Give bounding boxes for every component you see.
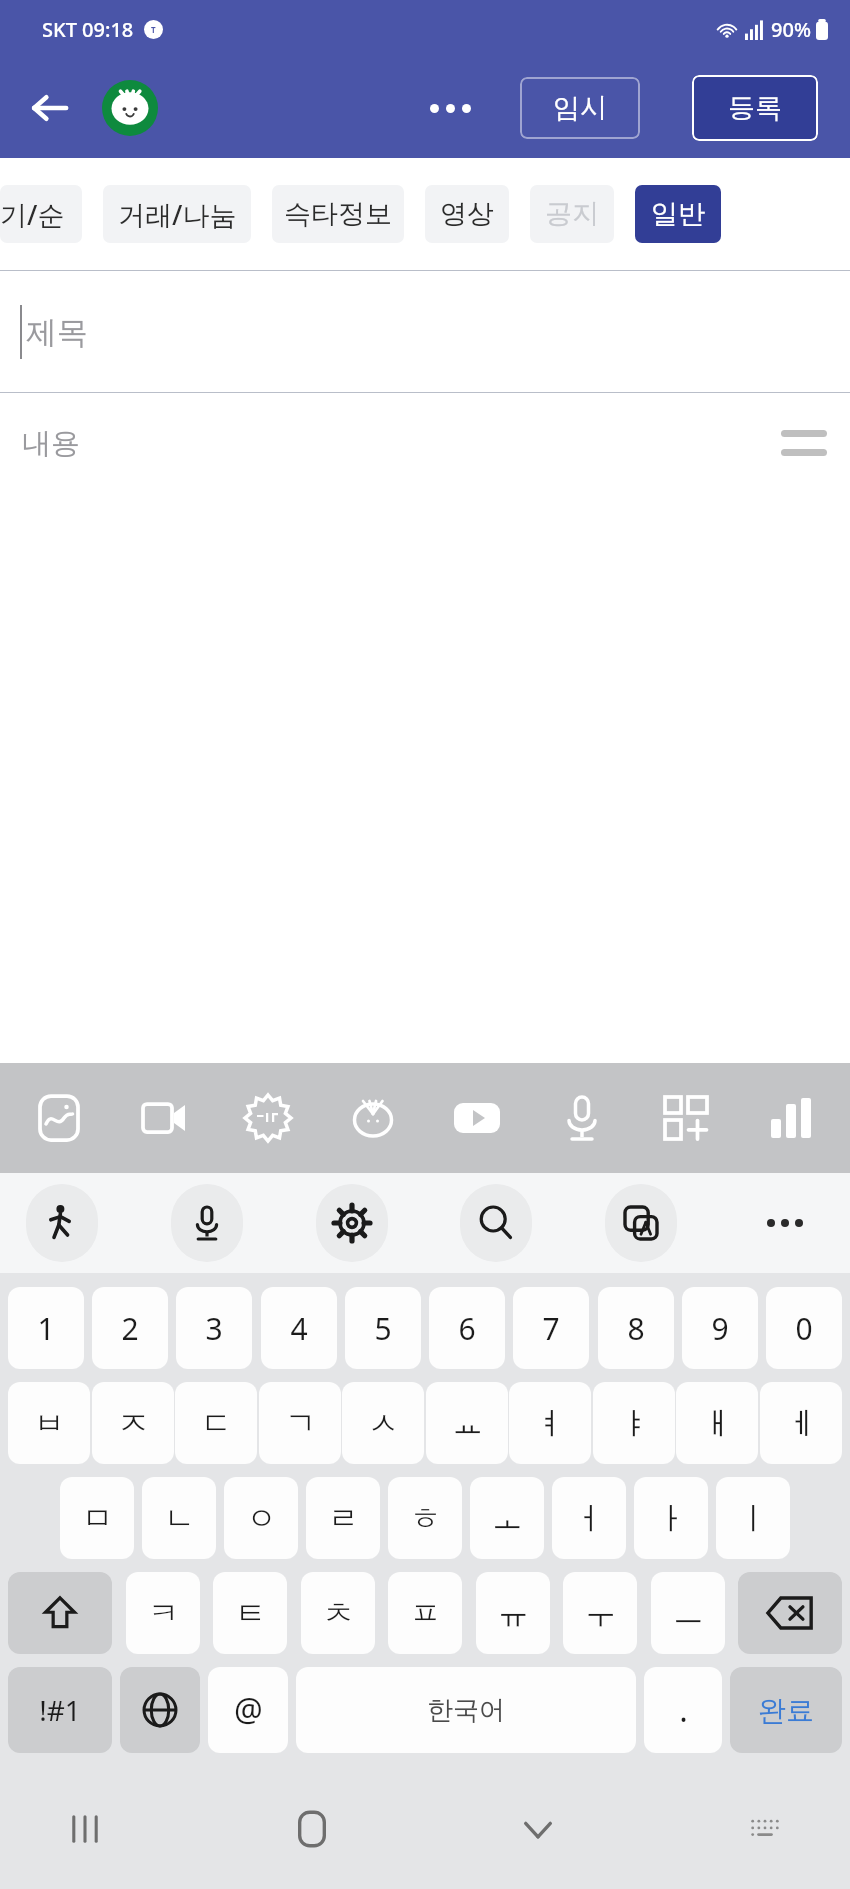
button[interactable]: 등록 (692, 75, 818, 141)
button[interactable]: 완료 (730, 1667, 842, 1753)
button[interactable]: . (644, 1667, 722, 1753)
button[interactable]: ㄹ (306, 1477, 380, 1559)
button[interactable]: ㅣ (716, 1477, 790, 1559)
button[interactable]: ㅊ (301, 1572, 375, 1654)
button[interactable]: ㅐ (676, 1382, 758, 1464)
button[interactable]: More options (420, 78, 480, 138)
button[interactable]: 영상 (425, 185, 509, 243)
staticText: ㅌ (235, 1594, 266, 1633)
button[interactable]: GIF (223, 1073, 313, 1163)
button[interactable]: Spell check (26, 1184, 98, 1262)
button[interactable]: Video (119, 1073, 209, 1163)
staticText: ㅓ (574, 1499, 605, 1538)
button[interactable]: ㄴ (142, 1477, 216, 1559)
button[interactable]: Add template (641, 1073, 731, 1163)
button[interactable]: ㅇ (224, 1477, 298, 1559)
staticText: ㅗ (492, 1499, 523, 1538)
button[interactable]: 한국어 (296, 1667, 636, 1753)
button[interactable]: ㅎ (388, 1477, 462, 1559)
button[interactable]: Translate (605, 1184, 677, 1262)
button[interactable]: ㅈ (92, 1382, 174, 1464)
staticText: !#1 (39, 1691, 81, 1729)
button[interactable]: ㅗ (470, 1477, 544, 1559)
button[interactable]: Hide keyboard (493, 1784, 583, 1874)
button[interactable]: 2 (92, 1287, 168, 1369)
staticText: ㅐ (702, 1404, 733, 1443)
staticText: ㅏ (656, 1499, 687, 1538)
button[interactable]: ㅠ (476, 1572, 550, 1654)
staticText: 완료 (758, 1693, 814, 1728)
staticText: 90% (771, 16, 811, 43)
staticText: 8 (627, 1308, 645, 1349)
button[interactable]: 8 (598, 1287, 674, 1369)
button[interactable]: ㄱ (259, 1382, 341, 1464)
button[interactable]: @ (208, 1667, 288, 1753)
button[interactable]: 4 (261, 1287, 337, 1369)
button[interactable]: 6 (429, 1287, 505, 1369)
button[interactable]: Voice input (171, 1184, 243, 1262)
staticText: ㄴ (164, 1499, 195, 1538)
button[interactable]: Profile (100, 78, 160, 138)
button[interactable]: Backspace (738, 1572, 842, 1654)
button[interactable]: Sticker (328, 1073, 418, 1163)
button[interactable]: ㅍ (388, 1572, 462, 1654)
button[interactable]: ㄷ (175, 1382, 257, 1464)
button[interactable]: ㅑ (593, 1382, 675, 1464)
staticText: SKT 09:18 (42, 16, 134, 43)
button[interactable]: ㅜ (563, 1572, 637, 1654)
button[interactable]: 공지 (530, 185, 614, 243)
button[interactable]: Back (22, 80, 78, 136)
staticText: ㅇ (246, 1499, 277, 1538)
button[interactable]: Text alignment (772, 411, 836, 475)
button[interactable]: Change language (120, 1667, 200, 1753)
button[interactable]: Photo (14, 1073, 104, 1163)
button[interactable]: 임시 (520, 77, 640, 139)
staticText: ㅈ (118, 1404, 149, 1443)
staticText: 거래/나눔 (118, 196, 237, 233)
button[interactable]: ㅕ (509, 1382, 591, 1464)
staticText: ㄹ (328, 1499, 359, 1538)
staticText: 기/순례 (0, 196, 82, 233)
button[interactable]: Voice (537, 1073, 627, 1163)
staticText: 일반 (651, 197, 705, 231)
staticText: 7 (542, 1308, 560, 1349)
staticText: . (679, 1688, 688, 1732)
button[interactable]: !#1 (8, 1667, 112, 1753)
button[interactable]: ㅌ (213, 1572, 287, 1654)
button[interactable]: YouTube (432, 1073, 522, 1163)
button[interactable]: 9 (682, 1287, 758, 1369)
staticText: ㅔ (786, 1404, 817, 1443)
button[interactable]: Settings (316, 1184, 388, 1262)
button[interactable]: ㅅ (342, 1382, 424, 1464)
button[interactable]: 일반 (635, 185, 721, 243)
button[interactable]: Shift (8, 1572, 112, 1654)
button[interactable]: ㅓ (552, 1477, 626, 1559)
staticText: 2 (121, 1308, 139, 1349)
button[interactable]: 3 (176, 1287, 252, 1369)
button[interactable]: 거래/나눔 (103, 185, 251, 243)
button[interactable]: Keyboard layout (720, 1784, 810, 1874)
button[interactable]: ㅛ (426, 1382, 508, 1464)
button[interactable]: 5 (345, 1287, 421, 1369)
button[interactable]: 7 (513, 1287, 589, 1369)
staticText: ㅠ (498, 1594, 529, 1633)
staticText: 4 (290, 1308, 308, 1349)
staticText: 6 (458, 1308, 476, 1349)
button[interactable]: ㅏ (634, 1477, 708, 1559)
button[interactable]: Poll (746, 1073, 836, 1163)
button[interactable]: Recents (40, 1784, 130, 1874)
staticText: ㄱ (285, 1404, 316, 1443)
button[interactable]: Home (267, 1784, 357, 1874)
button[interactable]: 0 (766, 1287, 842, 1369)
button[interactable]: ㅡ (651, 1572, 725, 1654)
button[interactable]: ㅔ (760, 1382, 842, 1464)
button[interactable]: 기/순례 (0, 185, 82, 243)
staticText: ㅕ (535, 1404, 566, 1443)
button[interactable]: 1 (8, 1287, 84, 1369)
button[interactable]: Search (460, 1184, 532, 1262)
button[interactable]: ㅋ (126, 1572, 200, 1654)
button[interactable]: ㅁ (60, 1477, 134, 1559)
button[interactable]: More (750, 1188, 820, 1258)
button[interactable]: ㅂ (8, 1382, 90, 1464)
button[interactable]: 슥타정보 (272, 185, 404, 243)
